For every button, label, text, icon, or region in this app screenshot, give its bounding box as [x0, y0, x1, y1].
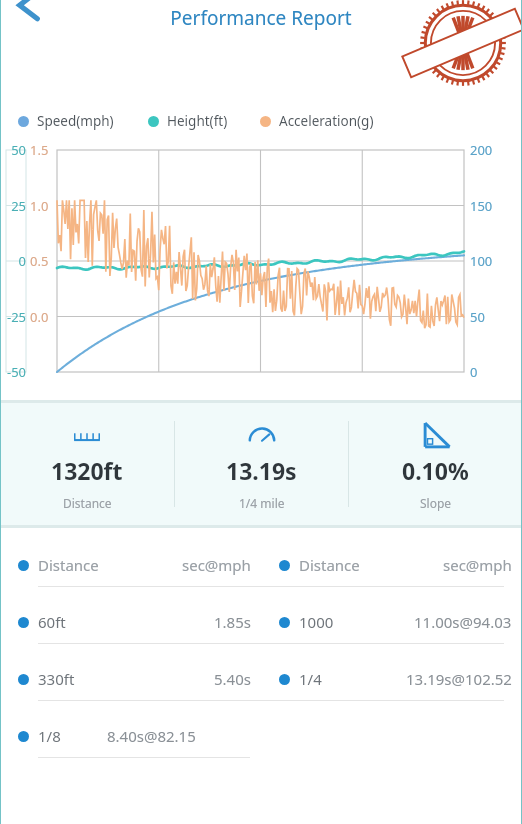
staticText: -25	[0, 308, 26, 326]
staticText: 330ft	[38, 669, 75, 689]
staticText: 25	[0, 197, 26, 215]
staticText: 1.85s	[214, 612, 251, 632]
staticText: Speed(mph)	[37, 112, 114, 130]
staticText: 13.19s	[226, 455, 297, 486]
button[interactable]: 13.19s	[175, 403, 348, 525]
button[interactable]: 1320ft	[0, 403, 174, 525]
button[interactable]: 1/8	[0, 715, 522, 757]
staticText: Distance	[38, 555, 99, 575]
staticText: 1/4 mile	[239, 495, 285, 511]
staticText: 200	[470, 141, 493, 159]
button[interactable]: Acceleration(g)	[260, 112, 374, 130]
staticText: Performance Report	[170, 5, 352, 31]
staticText: Height(ft)	[167, 112, 228, 130]
button[interactable]: Back	[2, 0, 54, 26]
button[interactable]: 330ft	[0, 658, 261, 700]
staticText: 1/8	[38, 726, 61, 746]
staticText: 0.10%	[402, 455, 469, 486]
staticText: 8.40s@82.15	[107, 726, 196, 746]
staticText: 11.00s@94.03	[414, 612, 512, 632]
staticText: 1/4	[299, 669, 322, 689]
staticText: 0.5	[30, 252, 49, 270]
staticText: 0	[470, 363, 478, 381]
staticText: sec@mph	[182, 555, 251, 575]
staticText: 1320ft	[51, 455, 123, 486]
staticText: 1000	[299, 612, 334, 632]
staticText: 0	[0, 252, 26, 270]
staticText: 100	[470, 252, 493, 270]
staticText: 150	[470, 197, 493, 215]
staticText: 5.40s	[214, 669, 251, 689]
staticText: sec@mph	[443, 555, 512, 575]
staticText: 50	[0, 141, 26, 159]
button[interactable]: 0.10%	[349, 403, 522, 525]
staticText: 0.0	[30, 308, 49, 326]
staticText: Slope	[420, 495, 452, 511]
staticText: 13.19s@102.52	[406, 669, 512, 689]
staticText: 60ft	[38, 612, 66, 632]
staticText: Acceleration(g)	[279, 112, 374, 130]
button[interactable]: Speed(mph)	[18, 112, 114, 130]
staticText: 50	[470, 308, 485, 326]
staticText: Distance	[299, 555, 360, 575]
staticText: 1.0	[30, 197, 49, 215]
button[interactable]: Distance	[261, 544, 522, 586]
button[interactable]: 1000	[261, 601, 522, 643]
other: Valid stamp	[414, 0, 512, 92]
button[interactable]: 1/4	[261, 658, 522, 700]
staticText: Distance	[63, 495, 112, 511]
button[interactable]: Distance	[0, 544, 261, 586]
button[interactable]: 60ft	[0, 601, 261, 643]
staticText: 1.5	[30, 141, 49, 159]
button[interactable]: Height(ft)	[148, 112, 228, 130]
staticText: -50	[0, 363, 26, 381]
